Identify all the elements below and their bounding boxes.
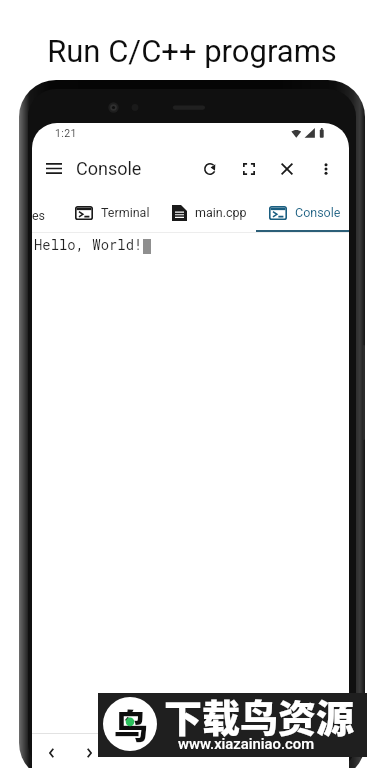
staticText: 1:21 <box>55 127 77 139</box>
staticText: Console <box>295 205 341 220</box>
staticText: www.xiazainiao.com <box>178 735 315 752</box>
button[interactable]: Previous <box>37 739 65 767</box>
staticText: Files <box>32 208 46 223</box>
staticText: Terminal <box>101 205 150 220</box>
button[interactable]: main.cpp <box>172 195 247 230</box>
button[interactable]: Refresh <box>196 155 223 182</box>
staticText: 下载鸟资源 <box>164 688 355 743</box>
button[interactable]: Close <box>273 155 300 182</box>
button[interactable]: Console <box>269 195 341 230</box>
button[interactable]: Enter full screen <box>235 155 262 182</box>
button[interactable]: Next <box>75 739 103 767</box>
staticText: Run C/C++ programs <box>47 33 337 69</box>
button[interactable]: Open navigation menu <box>35 157 72 180</box>
staticText: Console <box>76 158 142 179</box>
staticText: Hello, World! <box>34 235 143 253</box>
staticText: main.cpp <box>195 205 247 220</box>
button[interactable]: More options <box>312 155 339 182</box>
button[interactable]: Terminal <box>75 195 150 230</box>
staticText: 鸟 <box>114 700 148 749</box>
